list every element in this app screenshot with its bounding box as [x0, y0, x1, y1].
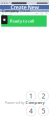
button[interactable]: Create New	[0, 5, 49, 9]
staticText: 5	[41, 107, 45, 115]
staticText: Company Portal	[1, 8, 18, 18]
button[interactable]: 1	[26, 91, 36, 101]
staticText: — □ ×	[35, 11, 47, 15]
staticText: Ready to call	[10, 18, 34, 24]
button[interactable]: 2	[38, 91, 48, 101]
staticText: Company Portal	[2, 8, 30, 13]
button[interactable]: 4	[26, 106, 36, 116]
staticText: Powered by	[4, 100, 24, 105]
staticText: 2	[41, 92, 45, 100]
staticText: 4	[29, 107, 33, 115]
staticText: · · ·	[42, 8, 47, 13]
staticText: 1	[29, 92, 33, 100]
button[interactable]: 5	[38, 106, 48, 116]
staticText: Create New	[10, 4, 38, 11]
staticText: Company	[25, 100, 44, 105]
